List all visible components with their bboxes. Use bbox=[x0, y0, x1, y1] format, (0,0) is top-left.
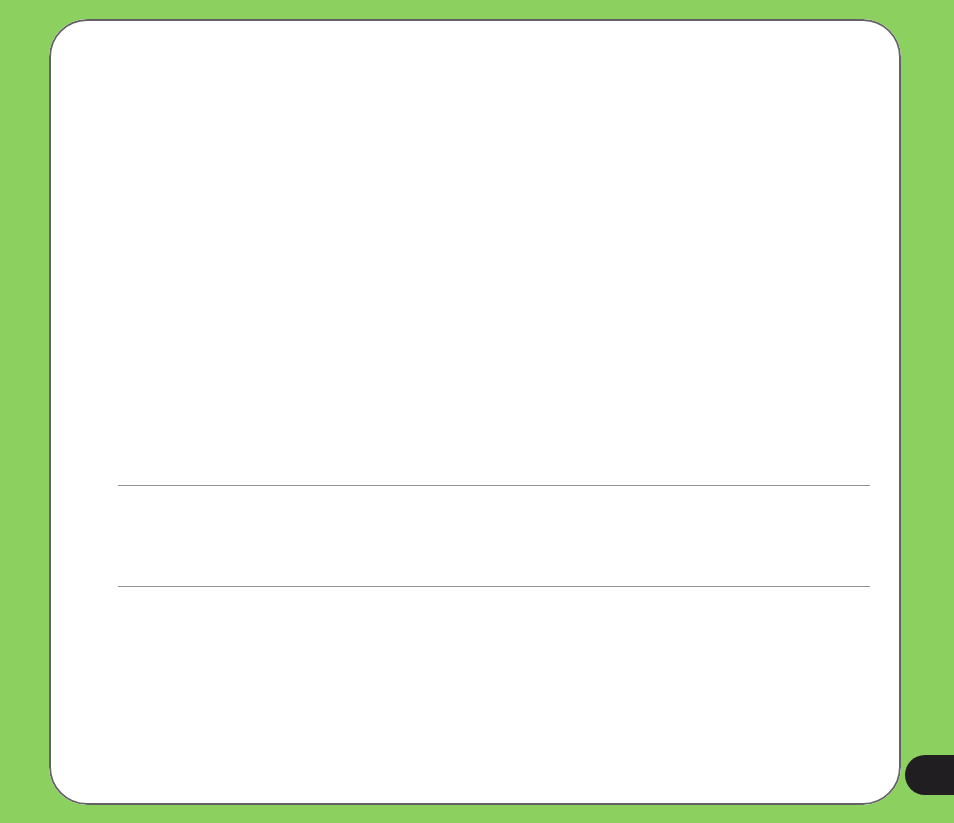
button[interactable]: Open side action bbox=[905, 755, 954, 795]
